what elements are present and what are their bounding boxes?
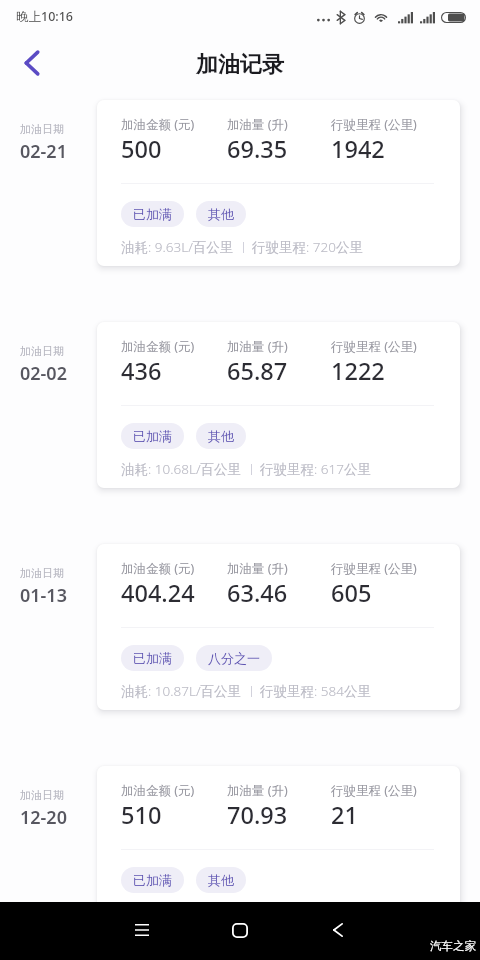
- button[interactable]: 加油金额 (元): [97, 322, 460, 488]
- staticText: 行驶里程: 720公里: [252, 238, 363, 256]
- button[interactable]: 已加满: [121, 867, 184, 893]
- staticText: 605: [331, 577, 372, 609]
- staticText: 1222: [331, 355, 385, 387]
- staticText: 汽车之家: [430, 939, 476, 953]
- staticText: 01-13: [20, 583, 67, 608]
- button[interactable]: Back: [315, 907, 361, 953]
- staticText: 02-02: [20, 361, 67, 386]
- staticText: 02-21: [20, 139, 67, 164]
- staticText: 八分之一: [208, 650, 260, 666]
- staticText: 行驶里程 (公里): [331, 560, 417, 577]
- button[interactable]: 其他: [196, 423, 246, 449]
- staticText: 加油日期: [20, 344, 64, 358]
- staticText: 65.87: [227, 355, 288, 387]
- staticText: 加油日期: [20, 566, 64, 580]
- staticText: 已加满: [133, 872, 172, 888]
- staticText: 行驶里程: 617公里: [260, 460, 371, 478]
- button[interactable]: 已加满: [121, 201, 184, 227]
- staticText: 行驶里程: 584公里: [260, 682, 371, 700]
- staticText: 其他: [208, 872, 234, 888]
- button[interactable]: 其他: [196, 201, 246, 227]
- button[interactable]: 其他: [196, 867, 246, 893]
- staticText: 500: [121, 133, 162, 165]
- staticText: 510: [121, 799, 162, 831]
- staticText: 已加满: [133, 206, 172, 222]
- staticText: 12-20: [20, 805, 67, 830]
- staticText: 已加满: [133, 428, 172, 444]
- staticText: 加油量 (升): [227, 338, 288, 355]
- staticText: 加油量 (升): [227, 116, 288, 133]
- button[interactable]: Recents: [119, 907, 165, 953]
- button[interactable]: 加油金额 (元): [97, 100, 460, 266]
- staticText: 晚上10:16: [16, 8, 74, 25]
- staticText: 加油金额 (元): [121, 338, 195, 355]
- staticText: 404.24: [121, 577, 195, 609]
- button[interactable]: Home: [217, 907, 263, 953]
- staticText: 加油金额 (元): [121, 116, 195, 133]
- staticText: 加油金额 (元): [121, 560, 195, 577]
- staticText: 加油量 (升): [227, 560, 288, 577]
- staticText: 加油日期: [20, 788, 64, 802]
- button[interactable]: 已加满: [121, 645, 184, 671]
- staticText: 行驶里程 (公里): [331, 338, 417, 355]
- button[interactable]: 八分之一: [196, 645, 272, 671]
- staticText: 已加满: [133, 650, 172, 666]
- staticText: 70.93: [227, 799, 288, 831]
- staticText: 1942: [331, 133, 385, 165]
- staticText: 69.35: [227, 133, 288, 165]
- staticText: 其他: [208, 206, 234, 222]
- staticText: 加油日期: [20, 122, 64, 136]
- staticText: 加油量 (升): [227, 782, 288, 799]
- button[interactable]: 加油金额 (元): [97, 544, 460, 710]
- staticText: 行驶里程 (公里): [331, 116, 417, 133]
- button[interactable]: 返回: [10, 41, 54, 85]
- staticText: 21: [331, 799, 358, 831]
- button[interactable]: 加油金额 (元): [97, 766, 460, 932]
- staticText: 63.46: [227, 577, 288, 609]
- staticText: 436: [121, 355, 162, 387]
- staticText: 行驶里程 (公里): [331, 782, 417, 799]
- staticText: 油耗: 10.87L/百公里: [121, 682, 242, 700]
- staticText: 加油金额 (元): [121, 782, 195, 799]
- button[interactable]: 已加满: [121, 423, 184, 449]
- staticText: 油耗: 10.68L/百公里: [121, 460, 242, 478]
- staticText: 加油记录: [196, 51, 284, 79]
- staticText: 其他: [208, 428, 234, 444]
- staticText: 油耗: 9.63L/百公里: [121, 238, 234, 256]
